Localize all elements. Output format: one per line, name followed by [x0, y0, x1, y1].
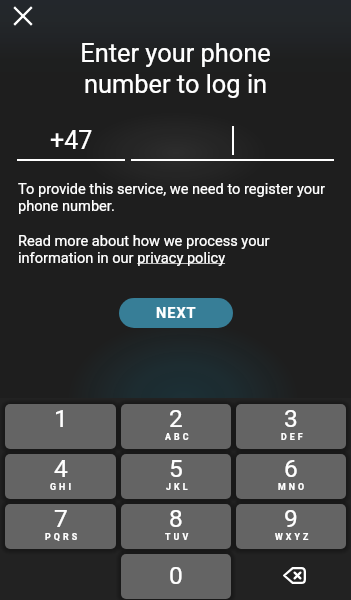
staticText: JKL	[166, 482, 191, 492]
staticText: DEF	[281, 432, 306, 442]
staticText: GHI	[50, 482, 75, 492]
button[interactable]: 1	[5, 404, 116, 449]
staticText: 0	[169, 561, 183, 590]
staticText: PQRS	[45, 532, 81, 542]
button[interactable]: 8	[121, 504, 231, 549]
button[interactable]: 9	[236, 504, 346, 549]
button[interactable]	[131, 125, 334, 161]
staticText: 1	[54, 404, 68, 433]
staticText: Enter your phone number to log in	[0, 38, 351, 99]
staticText: To provide this service, we need to regi…	[18, 180, 328, 214]
button[interactable]: 3	[236, 404, 346, 449]
staticText: 7	[54, 504, 68, 533]
button[interactable]: 0	[121, 554, 231, 599]
button[interactable]: NEXT	[119, 298, 233, 328]
button[interactable]: +47	[17, 125, 125, 161]
staticText: MNO	[278, 482, 308, 492]
button[interactable]: Close	[4, 0, 41, 34]
button[interactable]: Backspace	[236, 554, 346, 599]
button[interactable]: 2	[121, 404, 231, 449]
staticText: 2	[169, 404, 183, 433]
button[interactable]: 5	[121, 454, 231, 499]
staticText: 3	[284, 404, 298, 433]
staticText: +47	[50, 126, 93, 155]
staticText: 9	[284, 504, 298, 533]
staticText: 8	[169, 504, 183, 533]
button[interactable]: 4	[5, 454, 116, 499]
staticText: 5	[169, 454, 183, 483]
button[interactable]: 6	[236, 454, 346, 499]
staticText: Read more about how we process your info…	[18, 232, 318, 266]
staticText: 4	[54, 454, 68, 483]
staticText: 6	[284, 454, 298, 483]
staticText: TUV	[165, 532, 192, 542]
staticText: NEXT	[156, 305, 197, 322]
staticText: ABC	[165, 432, 192, 442]
button[interactable]: 7	[5, 504, 116, 549]
staticText: WXYZ	[275, 532, 312, 542]
